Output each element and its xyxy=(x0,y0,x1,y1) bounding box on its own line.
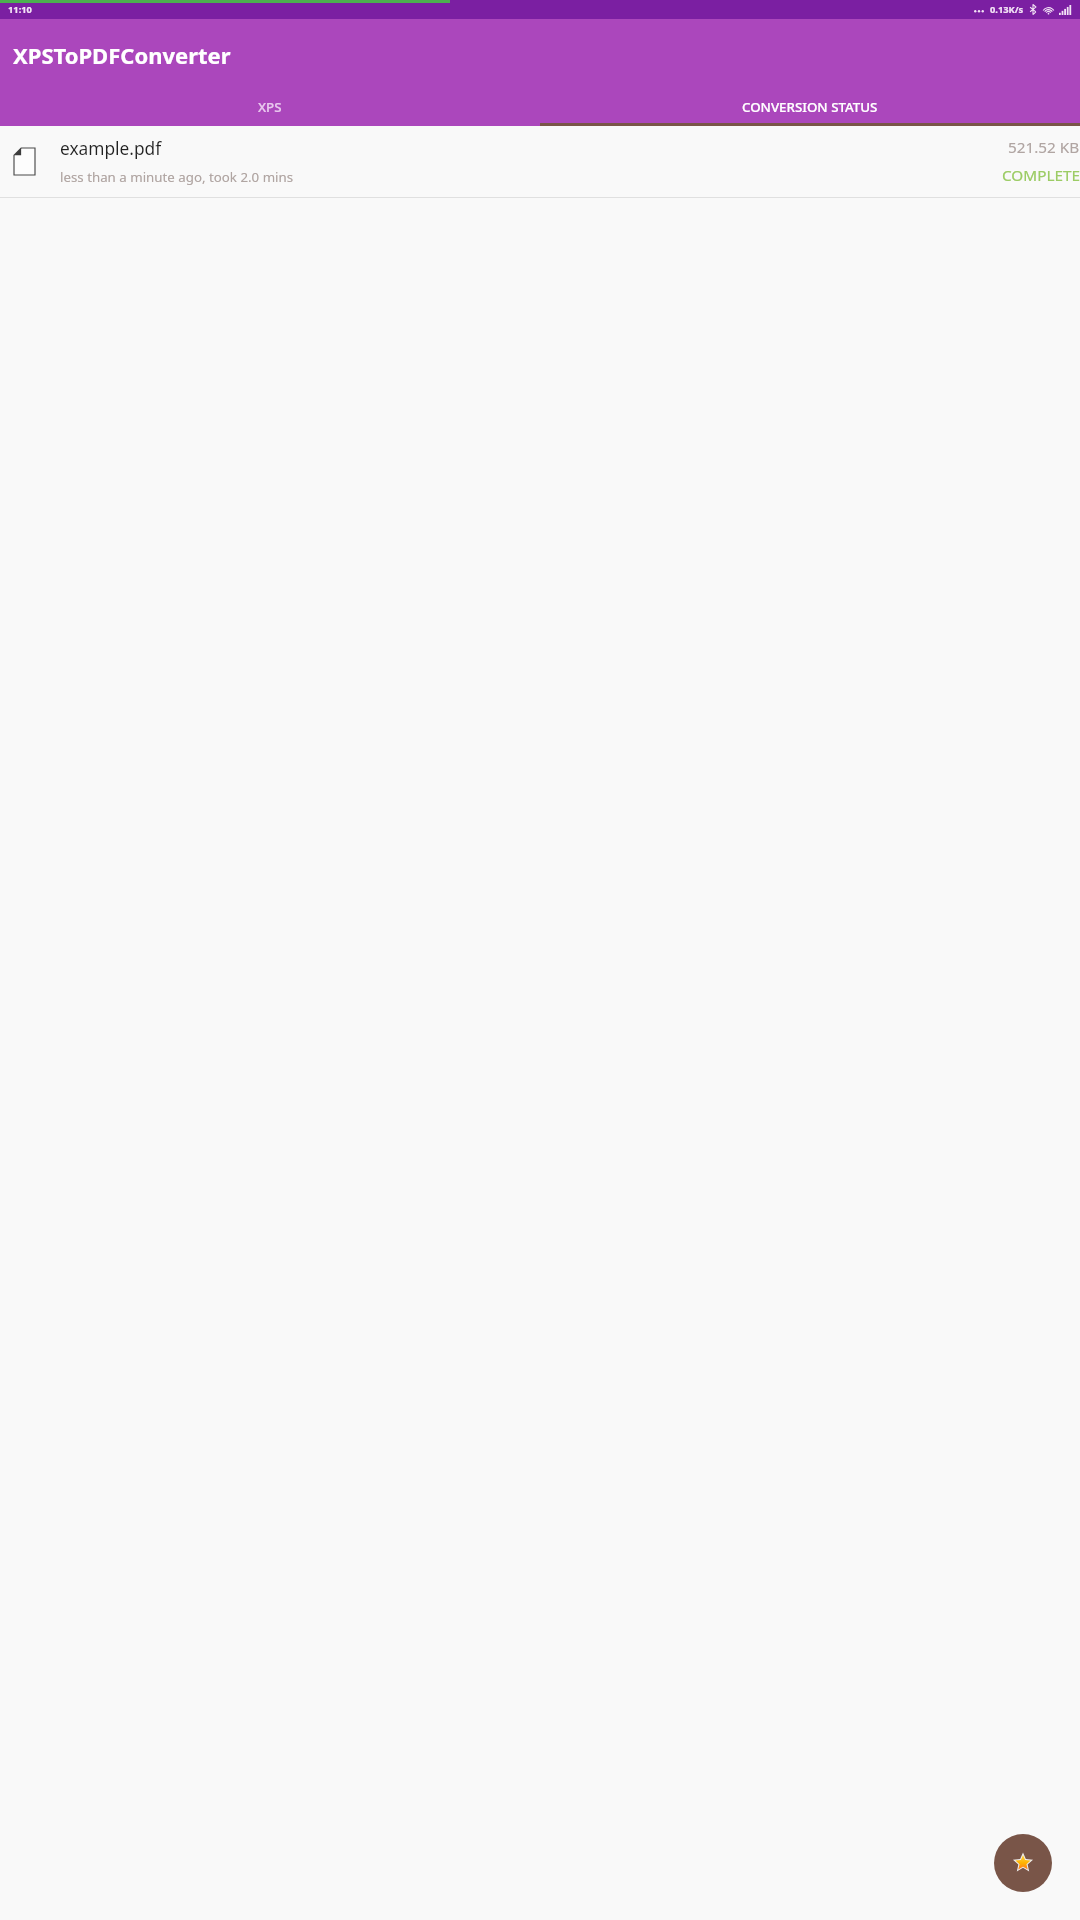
staticText: XPS xyxy=(258,98,282,116)
staticText: less than a minute ago, took 2.0 mins xyxy=(60,168,294,186)
button[interactable]: example.pdf xyxy=(0,126,1080,197)
staticText: 0.13K/s xyxy=(990,3,1024,16)
button[interactable]: Favorites xyxy=(994,1834,1052,1892)
staticText: 521.52 KB xyxy=(1008,137,1080,158)
staticText: XPSToPDFConverter xyxy=(13,40,231,70)
button[interactable]: CONVERSION STATUS xyxy=(540,90,1080,123)
staticText: CONVERSION STATUS xyxy=(742,98,878,116)
staticText: example.pdf xyxy=(60,137,162,161)
staticText: COMPLETE xyxy=(1002,165,1080,186)
staticText: 11:10 xyxy=(8,3,32,16)
button[interactable]: XPS xyxy=(0,90,540,123)
